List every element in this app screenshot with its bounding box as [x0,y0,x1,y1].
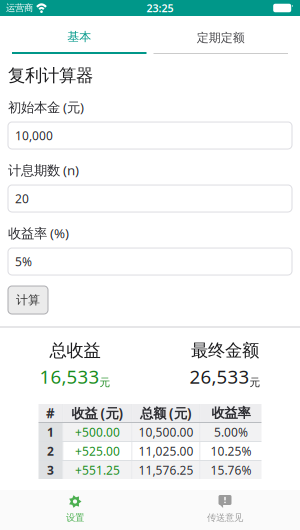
staticText: 传送意见 [207,512,243,523]
staticText: 元 [249,376,260,389]
staticText: 10,500.00 [138,424,193,440]
staticText: +500.00 [75,424,120,440]
button[interactable]: 传送意见 [150,490,300,530]
staticText: 计算 [16,293,40,307]
staticText: 最终金额 [191,340,259,361]
staticText: 10,000 [15,127,53,143]
staticText: 初始本金 (元) [8,98,84,116]
staticText: 收益率 [211,405,250,421]
staticText: 3 [47,462,54,478]
staticText: 收益率 (%) [8,224,69,242]
button[interactable]: 定期定额 [153,16,288,54]
staticText: 元 [99,376,110,389]
staticText: 2 [47,443,54,459]
staticText: 收益 (元) [71,404,123,422]
staticText: 计息期数 (n) [8,161,79,179]
staticText: 1 [47,424,54,440]
staticText: 运营商 [6,2,33,14]
staticText: 11,576.25 [138,462,193,478]
staticText: +525.00 [75,443,120,459]
staticText: 设置 [66,512,84,523]
button[interactable]: 设置 [0,490,150,530]
staticText: 15.76% [210,462,251,478]
button[interactable]: 计算 [8,286,48,314]
staticText: +551.25 [75,462,120,478]
staticText: 10.25% [210,443,251,459]
staticText: 5% [15,253,32,269]
staticText: 26,533 [189,364,249,389]
staticText: 复利计算器 [8,65,93,86]
staticText: 总收益 [49,340,100,361]
staticText: 定期定额 [197,30,245,45]
staticText: 20 [15,190,29,206]
button[interactable]: 基本 [12,16,146,54]
staticText: 23:25 [146,1,173,15]
staticText: 16,533 [39,364,99,389]
staticText: # [46,404,55,422]
staticText: 总额 (元) [140,404,192,422]
staticText: 11,025.00 [138,443,193,459]
staticText: 5.00% [214,424,248,440]
staticText: 基本 [67,29,91,44]
